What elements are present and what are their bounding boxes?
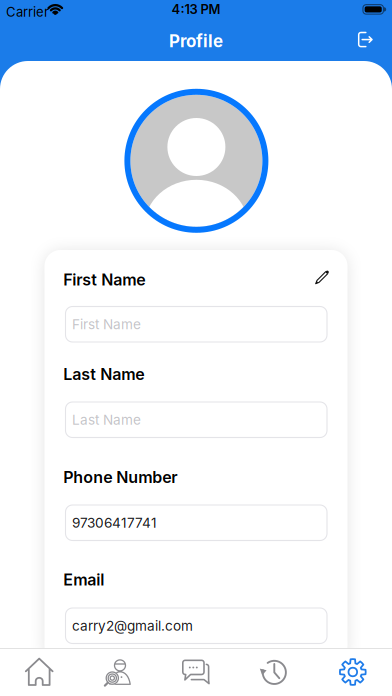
button[interactable] (235, 648, 314, 696)
staticText: 4:13 PM (171, 1, 220, 17)
button[interactable] (349, 24, 382, 56)
staticText: Last Name (63, 364, 144, 384)
button[interactable]: 97306417741 (65, 505, 327, 540)
staticText: Last Name (72, 411, 141, 428)
staticText: First Name (72, 316, 141, 332)
button[interactable] (157, 648, 235, 696)
staticText: carry2@gmail.com (72, 617, 193, 634)
staticText: Carrier (6, 4, 49, 20)
staticText: Phone Number (63, 467, 177, 487)
button[interactable] (78, 648, 157, 696)
staticText: Profile (169, 31, 223, 51)
button[interactable]: Last Name (65, 402, 327, 437)
staticText: Email (63, 570, 104, 589)
button[interactable] (0, 648, 78, 696)
button[interactable] (123, 88, 269, 234)
button[interactable] (314, 269, 330, 285)
button[interactable] (314, 648, 392, 696)
button[interactable]: carry2@gmail.com (65, 608, 327, 643)
staticText: First Name (63, 270, 145, 289)
button[interactable]: First Name (65, 306, 327, 342)
staticText: 97306417741 (72, 514, 157, 531)
